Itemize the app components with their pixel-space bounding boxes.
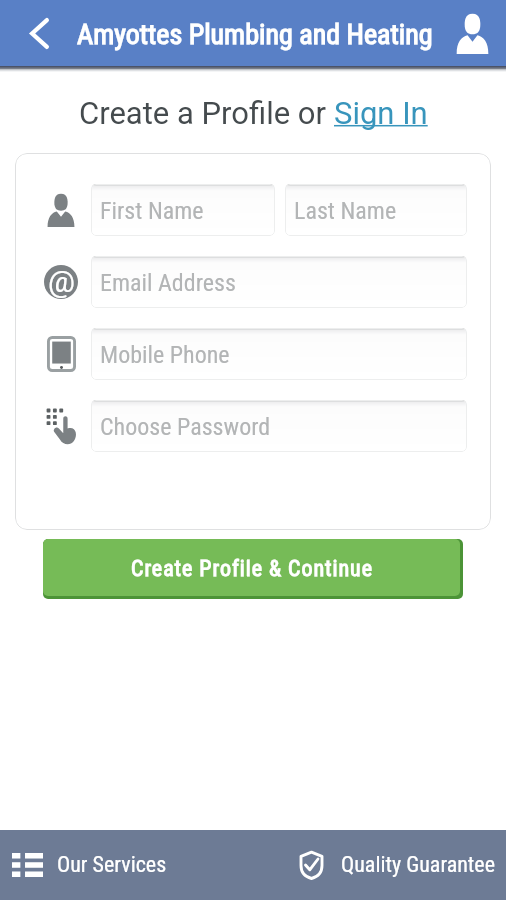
staticText: Our Services <box>57 852 167 878</box>
button[interactable]: Our Services <box>0 830 286 900</box>
staticText: Create a Profile or <box>79 95 334 131</box>
button[interactable]: Choose Password <box>91 400 467 452</box>
staticText: Quality Guarantee <box>341 852 495 878</box>
staticText: Create Profile & Continue <box>131 556 373 582</box>
button[interactable]: Create Profile & Continue <box>43 539 460 596</box>
button[interactable]: Back <box>15 9 63 57</box>
staticText: Choose Password <box>100 413 271 441</box>
button[interactable]: First Name <box>91 184 275 236</box>
button[interactable]: Mobile Phone <box>91 328 467 380</box>
staticText: Amyottes Plumbing and Heating <box>77 18 433 51</box>
staticText: Email Address <box>100 269 236 297</box>
button[interactable]: Quality Guarantee <box>286 830 506 900</box>
button[interactable]: Account <box>448 9 496 57</box>
staticText: First Name <box>100 197 204 225</box>
button[interactable]: Email Address <box>91 256 467 308</box>
staticText: Last Name <box>294 197 397 225</box>
staticText: Mobile Phone <box>100 341 230 369</box>
button[interactable]: Last Name <box>285 184 467 236</box>
staticText: @ <box>48 265 75 298</box>
button[interactable]: Sign In <box>334 95 428 131</box>
